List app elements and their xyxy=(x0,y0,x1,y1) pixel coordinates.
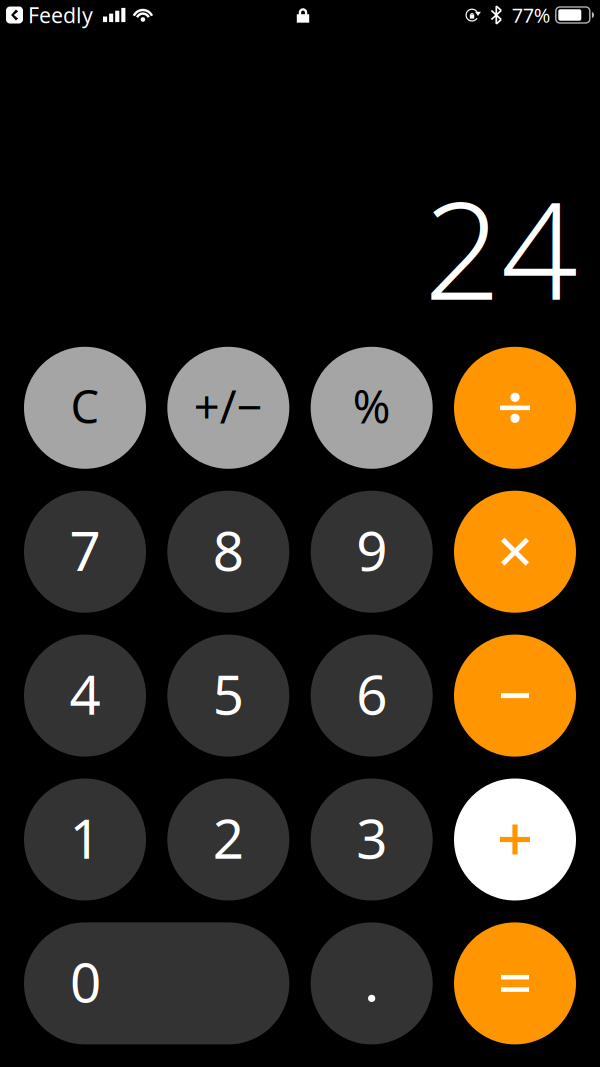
button[interactable]: 1 xyxy=(24,778,146,900)
button[interactable]: Decimal point xyxy=(311,922,433,1044)
staticText: +/− xyxy=(194,376,263,436)
staticText: 7 xyxy=(69,513,100,586)
staticText: 4 xyxy=(69,657,100,730)
staticText: 0 xyxy=(70,945,101,1018)
button[interactable]: Divide xyxy=(454,347,576,469)
staticText: C xyxy=(70,376,99,436)
staticText: 9 xyxy=(356,513,387,586)
button[interactable]: Multiply xyxy=(454,491,576,613)
button[interactable]: 6 xyxy=(311,635,433,757)
button[interactable]: 3 xyxy=(311,778,433,900)
staticText: 77% xyxy=(512,2,551,28)
button[interactable]: 9 xyxy=(311,491,433,613)
staticText: 2 xyxy=(213,801,244,874)
button[interactable]: 4 xyxy=(24,635,146,757)
button[interactable]: Feedly xyxy=(6,1,93,29)
button[interactable]: 5 xyxy=(167,635,289,757)
staticText: 6 xyxy=(356,657,387,730)
button[interactable]: 2 xyxy=(167,778,289,900)
staticText: 8 xyxy=(213,513,244,586)
staticText: 5 xyxy=(213,657,244,730)
staticText: % xyxy=(353,376,391,436)
staticText: 3 xyxy=(356,801,387,874)
button[interactable]: +/− xyxy=(167,347,289,469)
button[interactable]: Add xyxy=(454,778,576,900)
button[interactable]: 8 xyxy=(167,491,289,613)
button[interactable]: Subtract xyxy=(454,635,576,757)
staticText: Feedly xyxy=(28,1,93,29)
button[interactable]: % xyxy=(311,347,433,469)
button[interactable]: C xyxy=(24,347,146,469)
button[interactable]: 7 xyxy=(24,491,146,613)
button[interactable]: 0 xyxy=(24,922,289,1044)
staticText: 1 xyxy=(69,801,100,874)
button[interactable]: Equals xyxy=(454,922,576,1044)
staticText: 24 xyxy=(424,158,578,337)
